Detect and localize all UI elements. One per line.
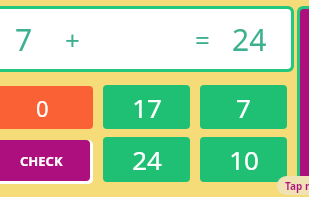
button[interactable]: 7 bbox=[200, 85, 287, 129]
staticText: 7 bbox=[236, 90, 251, 125]
button[interactable]: 7 bbox=[0, 6, 294, 72]
staticText: 24 bbox=[132, 142, 162, 177]
button[interactable]: Next panel bbox=[300, 9, 309, 188]
staticText: 0 bbox=[36, 93, 49, 123]
button[interactable]: 24 bbox=[103, 137, 190, 182]
staticText: 10 bbox=[229, 142, 259, 177]
button[interactable]: 10 bbox=[200, 137, 287, 182]
staticText: 7 bbox=[15, 19, 33, 60]
staticText: = bbox=[195, 22, 210, 57]
staticText: + bbox=[65, 22, 80, 57]
button[interactable]: 17 bbox=[103, 85, 190, 129]
button[interactable]: Tap n bbox=[285, 176, 309, 195]
staticText: 17 bbox=[132, 90, 162, 125]
staticText: CHECK bbox=[20, 152, 63, 170]
staticText: Tap n bbox=[285, 179, 309, 193]
button[interactable]: 0 bbox=[0, 86, 93, 129]
button[interactable]: CHECK bbox=[0, 140, 90, 181]
staticText: 24 bbox=[232, 19, 267, 60]
